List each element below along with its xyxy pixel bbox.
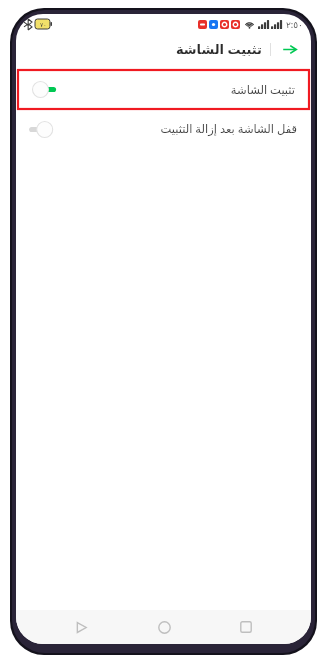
staticText: تثبيت الشاشة: [230, 82, 295, 98]
button[interactable]: قفل الشاشة بعد إزالة التثبيت: [16, 109, 311, 149]
button[interactable]: Recent apps: [229, 610, 263, 644]
staticText: ٢:٥٠: [286, 18, 303, 30]
staticText: تثبيت الشاشة: [175, 40, 262, 58]
button[interactable]: Home: [147, 610, 181, 644]
button[interactable]: Back: [64, 610, 98, 644]
button[interactable]: Back: [277, 37, 301, 61]
staticText: ٧٠: [40, 21, 47, 28]
staticText: قفل الشاشة بعد إزالة التثبيت: [160, 121, 297, 137]
button[interactable]: تثبيت الشاشة: [18, 70, 309, 109]
